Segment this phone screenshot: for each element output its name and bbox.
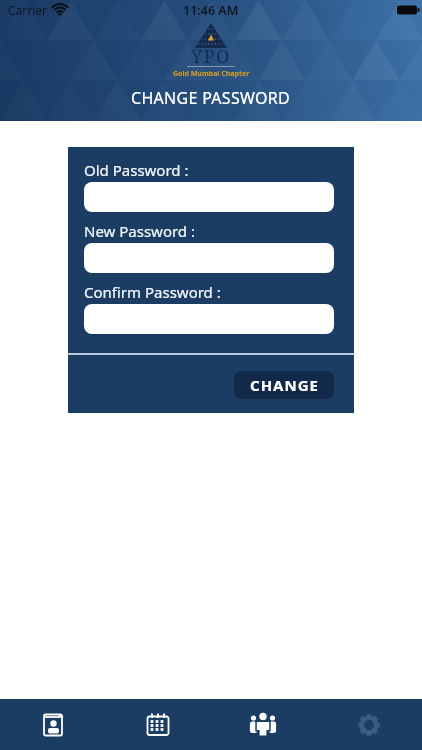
button[interactable] <box>316 699 422 750</box>
staticText: YPO <box>191 44 231 69</box>
staticText: Confirm Password : <box>84 282 221 300</box>
staticText: CHANGE <box>250 375 319 395</box>
button[interactable] <box>84 182 334 212</box>
button[interactable] <box>84 243 334 273</box>
staticText: Gold Mumbai Chapter <box>173 69 250 79</box>
button[interactable] <box>0 699 105 750</box>
staticText: CHANGE PASSWORD <box>131 87 291 109</box>
button[interactable]: CHANGE <box>234 371 334 399</box>
staticText: 11:46 AM <box>183 2 239 19</box>
button[interactable] <box>84 304 334 334</box>
staticText: Carrier <box>8 2 48 18</box>
staticText: Old Password : <box>84 160 189 178</box>
button[interactable] <box>210 699 316 750</box>
button[interactable] <box>105 699 210 750</box>
staticText: New Password : <box>84 221 196 239</box>
